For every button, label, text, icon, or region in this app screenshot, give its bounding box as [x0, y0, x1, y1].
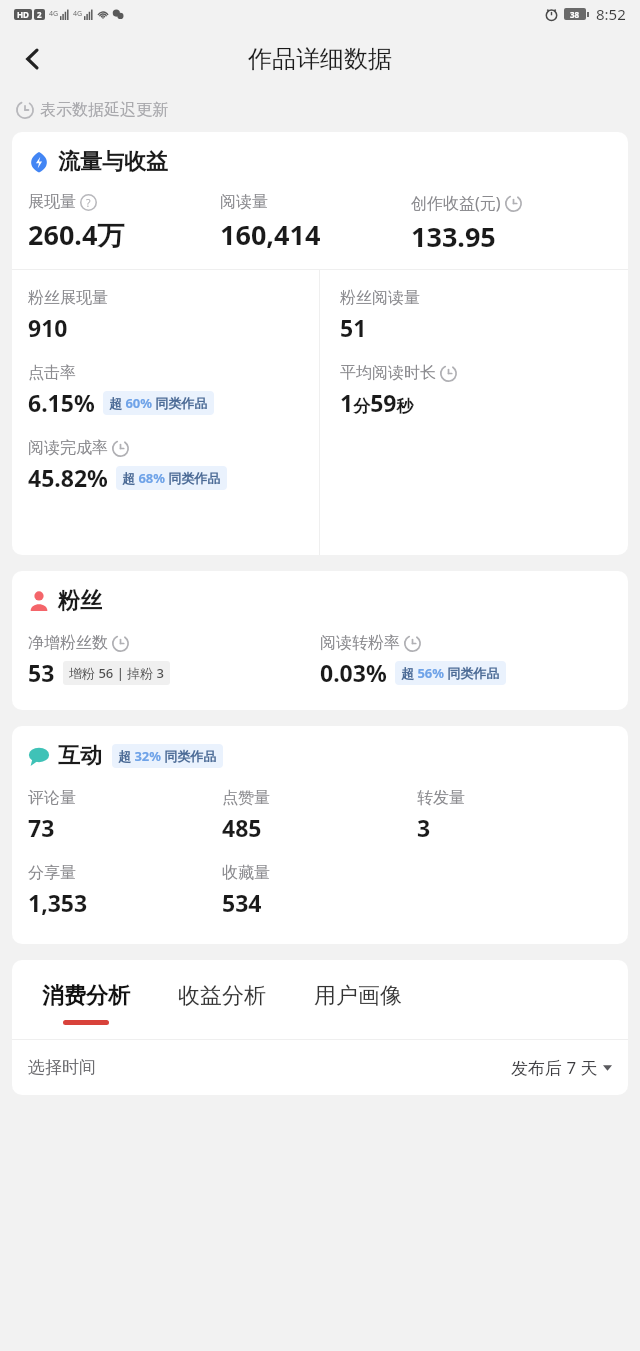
staticText: 超 56% 同类作品 [401, 664, 500, 682]
staticText: 表示数据延迟更新 [40, 100, 168, 120]
button[interactable]: 用户画像 [300, 982, 416, 1025]
staticText: 净增粉丝数 [28, 633, 108, 653]
staticText: 粉丝阅读量 [340, 288, 420, 308]
staticText: 转发量 [417, 788, 465, 808]
staticText: 0.03% [320, 657, 387, 688]
staticText: 发布后 7 天 [511, 1056, 598, 1079]
staticText: 互动 [58, 742, 102, 770]
staticText: 4G [49, 9, 59, 19]
staticText: 38 [570, 9, 580, 20]
staticText: 阅读完成率 [28, 438, 108, 458]
button[interactable]: 收益分析 [164, 982, 280, 1025]
staticText: 流量与收益 [58, 148, 168, 176]
staticText: 2 [37, 9, 42, 20]
staticText: 收藏量 [222, 863, 270, 883]
button[interactable]: 消费分析 [28, 982, 144, 1025]
staticText: ? [86, 196, 91, 210]
staticText: 评论量 [28, 788, 76, 808]
staticText: 分享量 [28, 863, 76, 883]
staticText: 消费分析 [42, 982, 130, 1010]
staticText: 45.82% [28, 462, 108, 493]
staticText: 粉丝 [58, 587, 102, 615]
staticText: 51 [340, 312, 367, 343]
staticText: 534 [222, 887, 262, 918]
staticText: 点赞量 [222, 788, 270, 808]
staticText: 作品详细数据 [248, 44, 392, 74]
staticText: 8:52 [596, 4, 626, 24]
staticText: 4G [73, 9, 83, 19]
staticText: 超 68% 同类作品 [122, 469, 221, 487]
staticText: 展现量 [28, 192, 76, 212]
staticText: 超 60% 同类作品 [109, 394, 208, 412]
staticText: 超 32% 同类作品 [118, 747, 217, 765]
staticText: 485 [222, 812, 262, 843]
staticText: 1分59秒 [340, 387, 414, 418]
button[interactable]: 发布后 7 天 [511, 1056, 612, 1079]
staticText: 阅读量 [220, 192, 268, 212]
staticText: 3 [417, 812, 431, 843]
staticText: 平均阅读时长 [340, 363, 436, 383]
staticText: 53 [28, 657, 55, 688]
staticText: 6.15% [28, 387, 95, 418]
staticText: 160,414 [220, 216, 321, 253]
staticText: 用户画像 [314, 982, 402, 1010]
staticText: 910 [28, 312, 68, 343]
staticText: 133.95 [411, 218, 496, 255]
staticText: 收益分析 [178, 982, 266, 1010]
staticText: 阅读转粉率 [320, 633, 400, 653]
staticText: HD [17, 9, 29, 20]
staticText: 增粉 56 | 掉粉 3 [69, 664, 164, 682]
staticText: 粉丝展现量 [28, 288, 108, 308]
staticText: 1,353 [28, 887, 88, 918]
staticText: 点击率 [28, 363, 76, 383]
button[interactable]: Back [10, 36, 56, 82]
staticText: 260.4万 [28, 216, 125, 253]
staticText: 创作收益(元) [411, 192, 501, 214]
staticText: 选择时间 [28, 1057, 96, 1078]
staticText: 73 [28, 812, 55, 843]
